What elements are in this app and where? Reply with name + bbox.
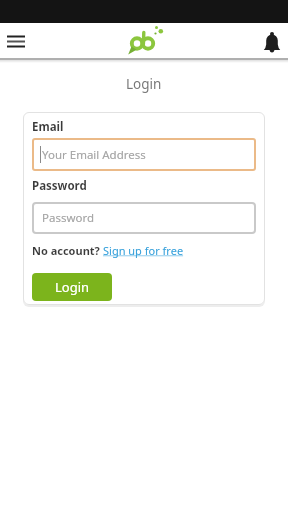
staticText: Login [126,75,162,93]
staticText: Email [32,119,64,135]
button[interactable]: Login [32,273,112,301]
button[interactable]: Sign up for free [103,243,184,258]
staticText: Login [55,278,90,296]
staticText: Password [42,210,95,226]
staticText: Password [32,178,87,194]
button[interactable]: Password [32,202,256,234]
staticText: Your Email Address [42,147,146,163]
button[interactable] [0,23,34,58]
button[interactable]: Your Email Address [32,138,256,171]
button[interactable] [252,23,288,58]
staticText: No account? [32,243,103,258]
